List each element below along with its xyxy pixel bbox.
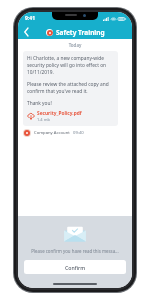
staticText: Please confirm you have read this messa.… — [31, 248, 119, 254]
staticText: 9:41 — [25, 15, 35, 22]
staticText: Please review the attached copy and conf… — [27, 81, 114, 95]
button[interactable]: Security_Policy.pdf — [27, 110, 82, 122]
staticText: Company Account — [34, 130, 70, 136]
staticText: Confirm — [65, 264, 86, 271]
staticText: Today — [18, 42, 132, 48]
staticText: Hi Charlotte, a new company-wide securit… — [27, 55, 114, 76]
staticText: 09:40 — [73, 130, 84, 136]
button[interactable]: Confirm — [24, 260, 126, 274]
staticText: Safety Training — [56, 28, 105, 37]
staticText: Thank you! — [27, 100, 52, 107]
button[interactable]: Hi Charlotte, a new company-wide securit… — [23, 51, 118, 126]
staticText: Security_Policy.pdf — [37, 110, 82, 117]
staticText: 1.4 mb — [37, 117, 50, 122]
button[interactable]: Back — [18, 25, 34, 39]
